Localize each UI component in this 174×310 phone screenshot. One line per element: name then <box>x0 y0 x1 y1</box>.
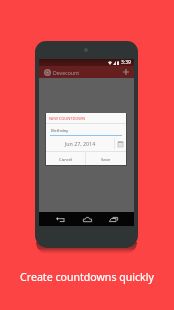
button[interactable]: Pick date <box>115 136 126 151</box>
staticText: 3:39 <box>121 59 131 66</box>
staticText: Create countdowns quickly <box>20 270 154 284</box>
button[interactable]: Back <box>47 212 73 226</box>
staticText: NEW COUNTDOWN <box>49 116 85 121</box>
button[interactable]: Save <box>86 152 126 165</box>
button[interactable]: Recents <box>100 212 126 226</box>
staticText: Devecount <box>53 69 80 76</box>
staticText: Save <box>101 156 111 162</box>
button[interactable]: Cancel <box>46 152 85 165</box>
staticText: Birthday <box>51 127 69 133</box>
button[interactable]: Home <box>74 212 100 226</box>
button[interactable]: Add countdown <box>120 66 132 78</box>
staticText: Jun 27, 2014 <box>46 140 114 147</box>
staticText: Cancel <box>59 156 73 162</box>
